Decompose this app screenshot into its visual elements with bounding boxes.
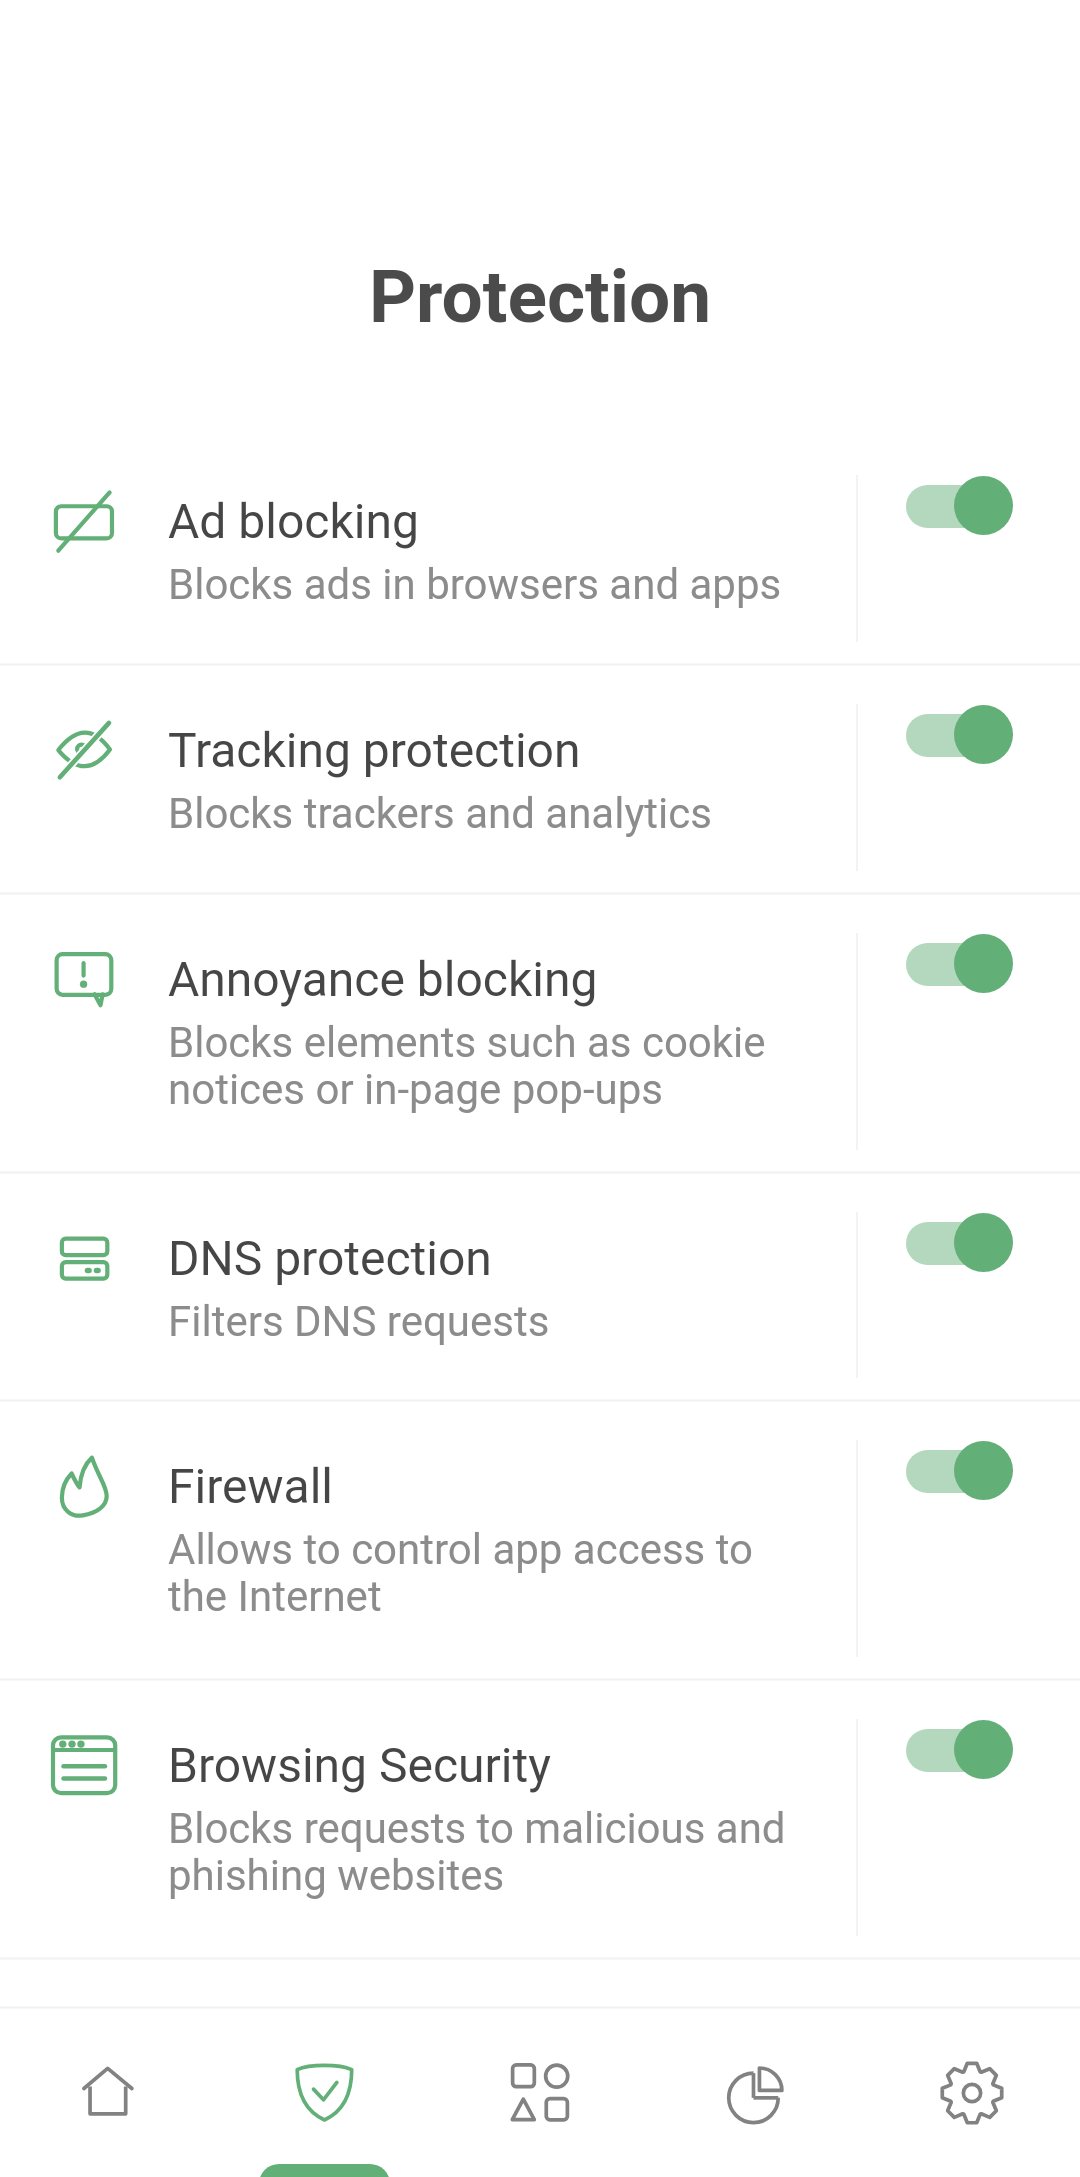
staticText: DNS protection [168,1231,492,1287]
button[interactable]: Firewall, on [898,1433,1022,1508]
staticText: Ad blocking [168,494,419,550]
button[interactable]: Tracking protection, on [898,697,1022,772]
button[interactable]: Ad blocking [0,437,1080,663]
staticText: Blocks elements such as cookie notices o… [168,1020,766,1114]
staticText: Firewall [168,1459,333,1515]
button[interactable]: Annoyance blocking [0,895,1080,1171]
button[interactable]: Home [0,2009,216,2177]
button[interactable]: DNS protection, on [898,1205,1022,1280]
button[interactable]: DNS protection [0,1174,1080,1399]
button[interactable]: Apps [432,2009,648,2177]
button[interactable]: Browsing Security [0,1681,1080,1957]
button[interactable]: Settings [864,2009,1080,2177]
button[interactable]: Firewall [0,1402,1080,1678]
button[interactable]: Annoyance blocking, on [898,926,1022,1001]
staticText: Filters DNS requests [168,1299,550,1346]
button[interactable]: Ad blocking, on [898,468,1022,543]
button[interactable]: Protection [216,2009,432,2177]
staticText: Blocks trackers and analytics [168,791,712,838]
button[interactable]: Statistics [648,2009,864,2177]
staticText: Allows to control app access to the Inte… [168,1527,753,1621]
staticText: Tracking protection [168,723,581,779]
staticText: Blocks ads in browsers and apps [168,562,782,609]
staticText: Protection [369,254,712,340]
button[interactable]: Tracking protection [0,666,1080,892]
button[interactable]: Browsing Security, on [898,1712,1022,1787]
staticText: Browsing Security [168,1738,551,1794]
staticText: Annoyance blocking [168,952,598,1008]
staticText: Blocks requests to malicious and phishin… [168,1806,786,1900]
